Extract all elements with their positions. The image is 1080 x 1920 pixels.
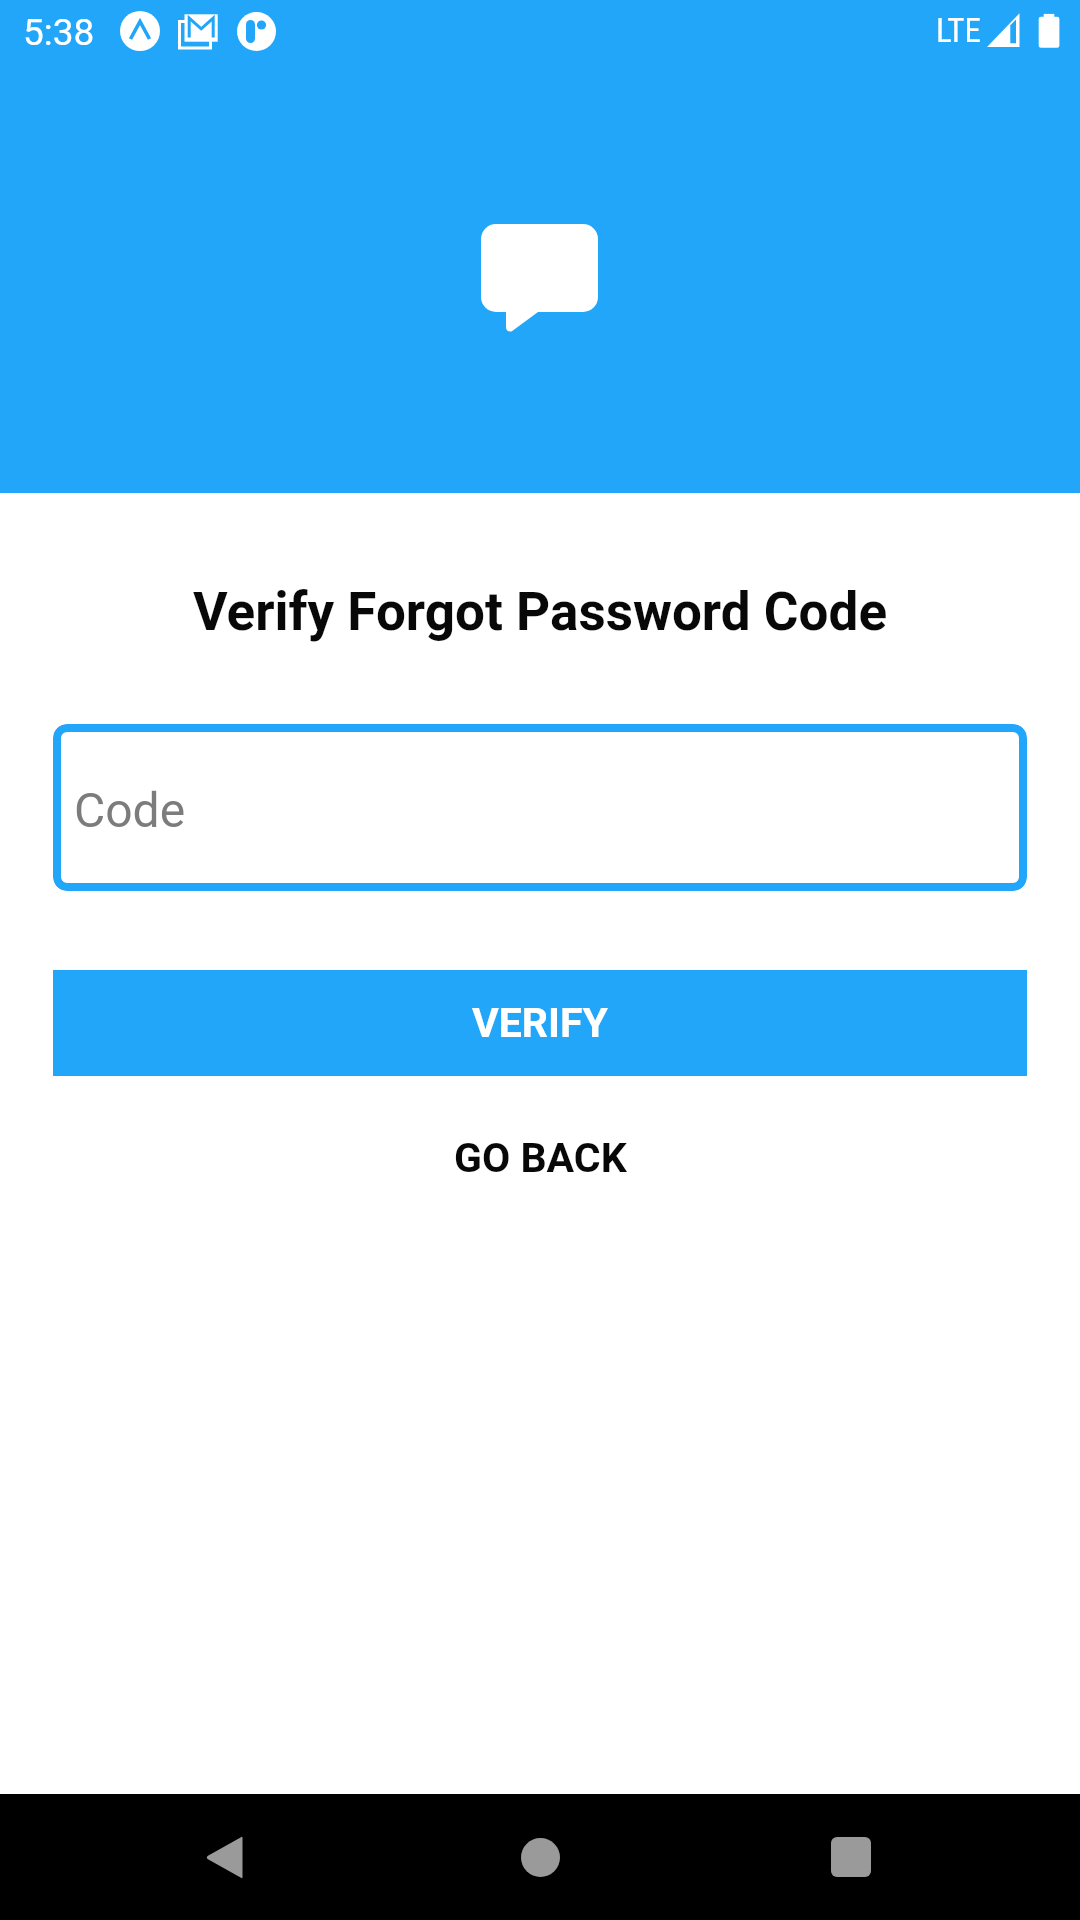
staticText: LTE (936, 11, 981, 50)
staticText: VERIFY (472, 999, 608, 1047)
button[interactable]: GO BACK (53, 1106, 1027, 1210)
button[interactable]: Home (477, 1794, 603, 1920)
button[interactable]: Code (53, 724, 1027, 891)
staticText: Code (74, 782, 186, 838)
staticText: Verify Forgot Password Code (0, 581, 1080, 643)
staticText: GO BACK (454, 1134, 627, 1182)
staticText: 5:38 (23, 11, 95, 54)
button[interactable]: VERIFY (53, 970, 1027, 1076)
button[interactable]: Recent apps (788, 1794, 914, 1920)
button[interactable]: Back (162, 1794, 288, 1920)
